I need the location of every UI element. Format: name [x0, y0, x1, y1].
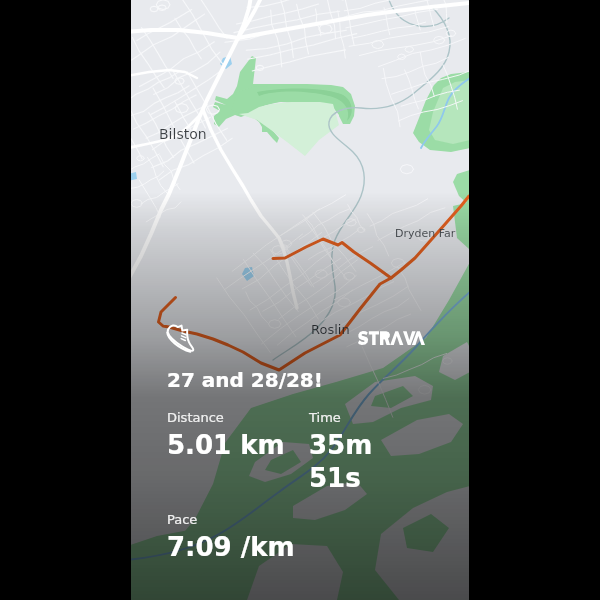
- staticText: 35m: [309, 430, 373, 460]
- staticText: Distance: [167, 410, 224, 425]
- staticText: Pace: [167, 512, 198, 527]
- staticText: Roslin: [311, 322, 350, 337]
- staticText: 27 and 28/28!: [167, 368, 323, 391]
- staticText: Bilston: [159, 126, 207, 142]
- staticText: 5.01 km: [167, 430, 285, 460]
- staticText: 7:09 /km: [167, 532, 295, 562]
- staticText: Time: [309, 410, 341, 425]
- staticText: 51s: [309, 463, 361, 493]
- other: Running activity: [163, 320, 199, 356]
- button[interactable]: Strava: [358, 331, 425, 345]
- staticText: Dryden Far: [395, 227, 456, 240]
